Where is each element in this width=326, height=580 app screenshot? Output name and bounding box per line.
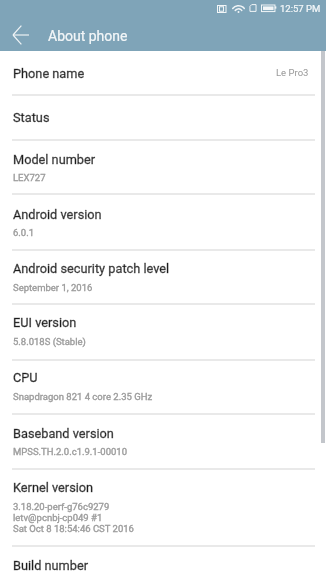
staticText: 5.8.018S (Stable) [13,336,86,347]
staticText: MPSS.TH.2.0.c1.9.1-00010 [13,446,128,457]
staticText: Build number [13,558,89,573]
button[interactable]: Back [2,16,37,51]
staticText: September 1, 2016 [13,282,93,293]
staticText: 5.8.018S (Stable) [13,336,86,347]
button[interactable] [0,194,326,249]
staticText: LEX727 [13,172,46,183]
staticText: letv@pcnbj-cp049 #1 [13,512,103,523]
staticText: Model number [13,152,96,167]
staticText: Baseband version [13,426,114,441]
staticText: Baseband version [13,426,114,441]
staticText: CPU [13,370,38,385]
staticText: 12:57 PM [280,3,321,14]
staticText: EUI version [13,315,77,330]
button[interactable] [0,414,326,468]
button[interactable] [0,140,326,193]
staticText: Kernel version [13,480,94,495]
staticText: Sat Oct 8 18:54:46 CST 2016 [13,523,134,534]
staticText: Build number [13,558,89,573]
staticText: Android security patch level [13,261,170,276]
staticText: Kernel version [13,480,94,495]
staticText: MPSS.TH.2.0.c1.9.1-00010 [13,446,128,457]
button[interactable] [0,51,326,94]
staticText: 6.0.1 [13,227,35,238]
staticText: EUI version [13,315,77,330]
staticText: Android security patch level [13,261,170,276]
button[interactable] [0,469,326,545]
staticText: 6.0.1 [13,227,35,238]
staticText: LEX727 [13,172,46,183]
staticText: Le Pro3 [276,67,309,78]
staticText: About phone [48,28,128,44]
button[interactable] [0,304,326,359]
staticText: Sat Oct 8 18:54:46 CST 2016 [13,523,134,534]
staticText: Snapdragon 821 4 core 2.35 GHz [13,391,153,402]
staticText: Android version [13,207,102,222]
staticText: letv@pcnbj-cp049 #1 [13,512,103,523]
staticText: CPU [13,370,38,385]
staticText: Status [13,110,50,125]
button[interactable] [0,546,326,580]
staticText: Phone name [13,66,85,81]
staticText: Status [13,110,50,125]
staticText: Phone name [13,66,85,81]
staticText: 3.18.20-perf-g76c9279 [13,501,110,512]
staticText: September 1, 2016 [13,282,93,293]
staticText: Android version [13,207,102,222]
button[interactable] [0,360,326,413]
button[interactable] [0,95,326,139]
staticText: 3.18.20-perf-g76c9279 [13,501,110,512]
staticText: Model number [13,152,96,167]
button[interactable] [0,250,326,303]
staticText: Snapdragon 821 4 core 2.35 GHz [13,391,153,402]
